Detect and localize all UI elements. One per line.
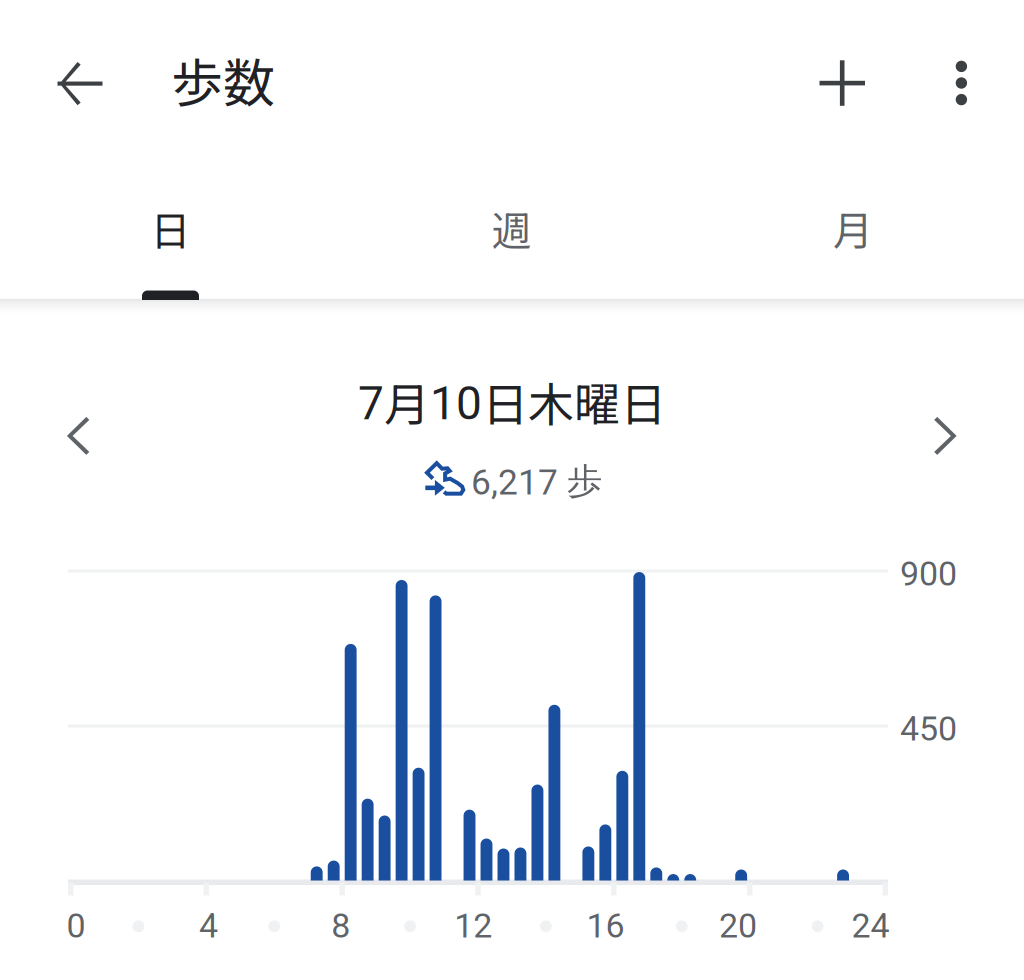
button[interactable]: Previous day [0,0,1024,980]
staticText: 6,217 歩 [471,459,602,503]
staticText: 450 [900,709,957,749]
staticText: 日 [150,199,190,257]
staticText: 24 [851,906,889,946]
staticText: 4 [199,906,218,946]
button[interactable]: 日 [0,161,341,295]
staticText: 16 [587,906,625,946]
staticText: 20 [719,906,757,946]
staticText: 8 [331,906,350,946]
button[interactable]: Add [0,0,1024,168]
button[interactable]: More options [0,0,1024,168]
staticText: 0 [66,906,85,946]
staticText: 12 [454,906,492,946]
button[interactable]: Next day [0,0,1024,980]
staticText: 月 [833,199,873,257]
button[interactable]: 月 [682,161,1024,295]
staticText: 7月10日木曜日 [358,369,666,434]
button[interactable]: 週 [341,161,682,295]
staticText: 900 [900,554,957,594]
staticText: 歩数 [171,42,275,117]
button[interactable]: Back [0,0,90,90]
staticText: 週 [491,199,531,257]
